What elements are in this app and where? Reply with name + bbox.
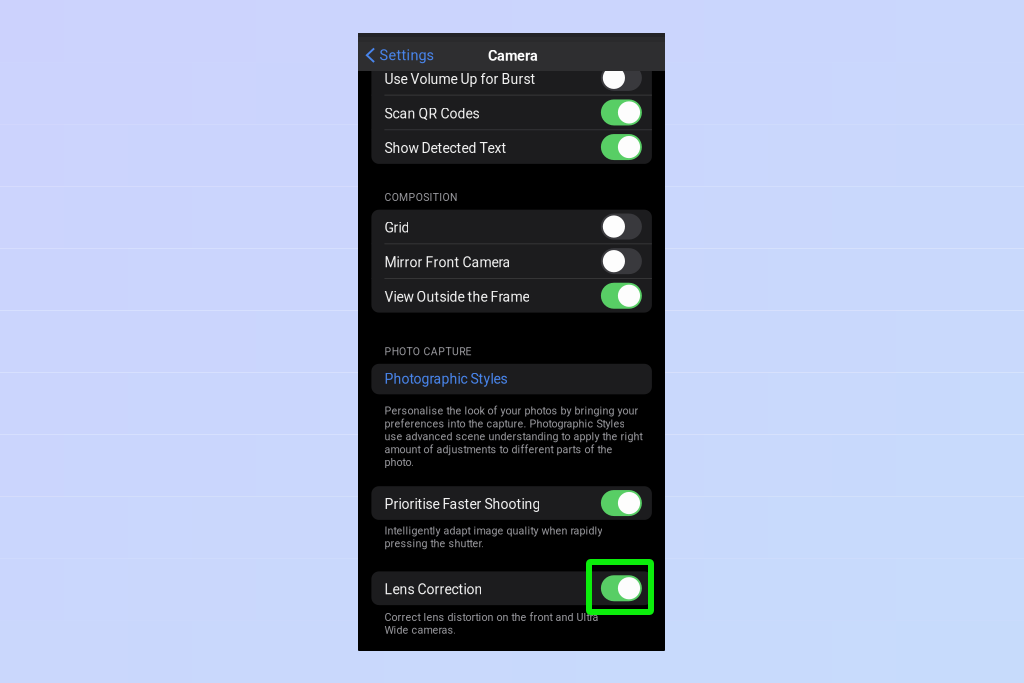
button[interactable]: Grid bbox=[371, 210, 652, 243]
button[interactable]: Show Detected Text bbox=[371, 130, 652, 164]
staticText: use advanced scene understanding to appl… bbox=[384, 430, 642, 443]
staticText: COMPOSITION bbox=[384, 191, 457, 204]
staticText: preferences into the capture. Photograph… bbox=[384, 417, 625, 430]
button[interactable]: Photographic Styles bbox=[371, 364, 652, 394]
staticText: View Outside the Frame bbox=[384, 289, 529, 305]
button[interactable]: View Outside the Frame bbox=[371, 279, 652, 313]
staticText: Photographic Styles bbox=[384, 371, 507, 387]
staticText: Lens Correction bbox=[384, 581, 482, 598]
button[interactable]: Settings bbox=[358, 39, 440, 72]
button[interactable]: Lens Correction bbox=[371, 571, 652, 605]
staticText: Correct lens distortion on the front and… bbox=[384, 611, 598, 623]
staticText: PHOTO CAPTURE bbox=[384, 345, 472, 358]
staticText: Intelligently adapt image quality when r… bbox=[384, 524, 602, 537]
staticText: Show Detected Text bbox=[384, 140, 506, 156]
staticText: amount of adjustments to different parts… bbox=[384, 443, 612, 456]
staticText: Prioritise Faster Shooting bbox=[384, 496, 540, 512]
button[interactable]: Scan QR Codes bbox=[371, 96, 652, 129]
staticText: Camera bbox=[488, 47, 538, 64]
button[interactable]: Use Volume Up for Burst bbox=[371, 61, 652, 95]
staticText: Grid bbox=[384, 220, 409, 236]
staticText: Settings bbox=[379, 47, 433, 64]
staticText: pressing the shutter. bbox=[384, 537, 484, 550]
staticText: Mirror Front Camera bbox=[384, 254, 510, 271]
button[interactable]: Prioritise Faster Shooting bbox=[371, 486, 652, 520]
button[interactable]: Mirror Front Camera bbox=[371, 244, 652, 278]
staticText: Personalise the look of your photos by b… bbox=[384, 405, 638, 417]
staticText: Scan QR Codes bbox=[384, 106, 479, 122]
staticText: Wide cameras. bbox=[384, 624, 456, 636]
staticText: Use Volume Up for Burst bbox=[384, 71, 535, 87]
staticText: photo. bbox=[384, 456, 414, 469]
